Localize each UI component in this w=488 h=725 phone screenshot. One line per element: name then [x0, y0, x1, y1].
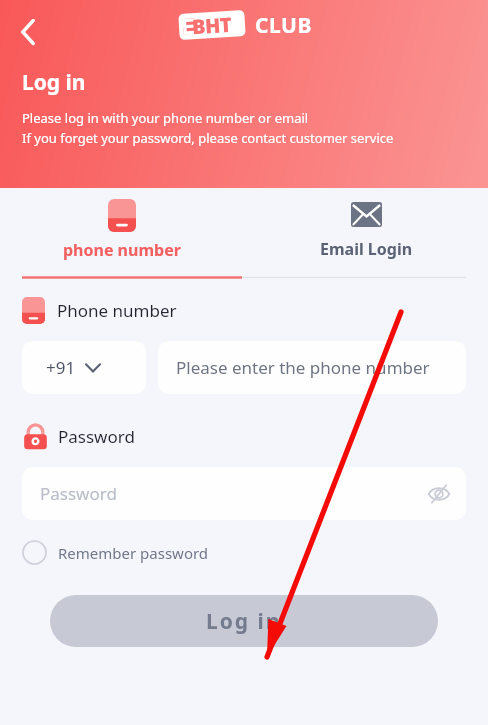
button[interactable]: Back [6, 10, 50, 54]
button[interactable]: Show password [422, 477, 456, 511]
staticText: Please enter the phone number [176, 356, 430, 379]
button[interactable]: Remember password [22, 540, 209, 565]
button[interactable]: +91 [22, 341, 146, 394]
staticText: Please log in with your phone number or … [22, 109, 309, 127]
staticText: Log in [206, 607, 282, 636]
staticText: Log in [22, 68, 86, 97]
staticText: Remember password [58, 543, 209, 563]
staticText: Phone number [57, 299, 177, 322]
button[interactable]: phone number [0, 188, 244, 276]
button[interactable]: Password [22, 467, 466, 520]
staticText: +91 [46, 356, 76, 379]
button[interactable]: Email Login [244, 188, 488, 276]
staticText: phone number [63, 239, 181, 261]
staticText: Email Login [320, 238, 413, 260]
button[interactable]: Please enter the phone number [158, 341, 466, 394]
staticText: Password [58, 425, 135, 448]
staticText: Password [40, 482, 117, 505]
staticText: CLUB [255, 11, 312, 40]
staticText: BHT [191, 11, 233, 40]
staticText: If you forget your password, please cont… [22, 129, 394, 147]
button[interactable]: Log in [50, 595, 438, 647]
